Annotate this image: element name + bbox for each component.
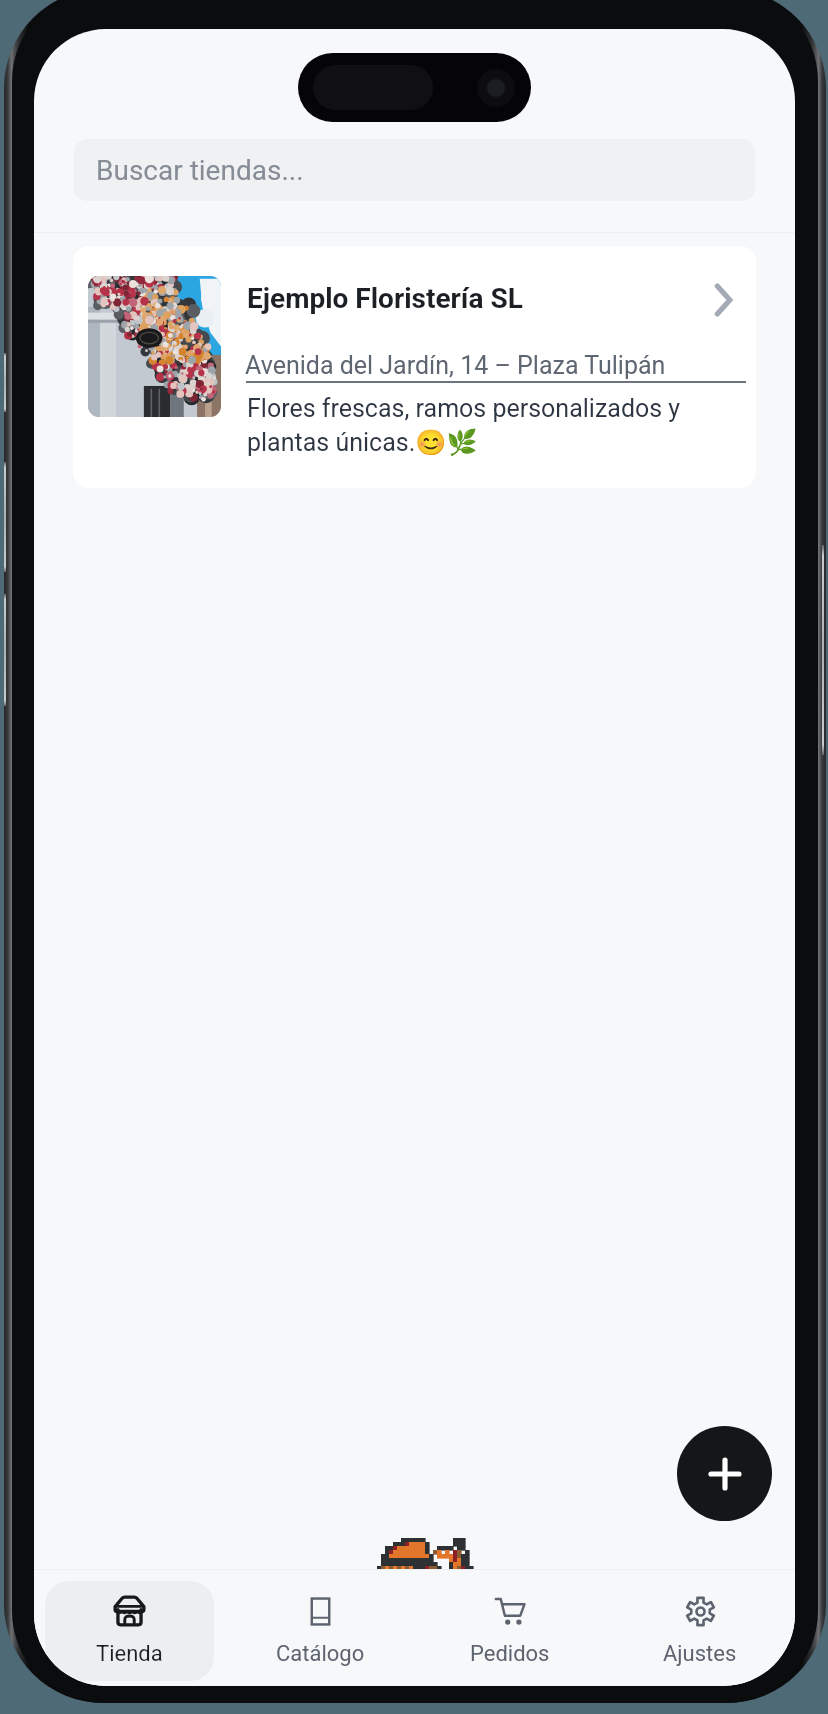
button[interactable]: Ajustes — [616, 1581, 784, 1681]
staticText: Flores frescas, ramos personalizados y p… — [247, 394, 681, 457]
staticText: Tienda — [96, 1641, 163, 1667]
staticText: Ajustes — [663, 1641, 737, 1667]
staticText: Pedidos — [470, 1641, 550, 1667]
staticText: Catálogo — [276, 1641, 365, 1667]
button[interactable]: Tienda — [45, 1581, 214, 1681]
button[interactable]: Abrir tienda — [699, 276, 747, 324]
staticText: Avenida del Jardín, 14 – Plaza Tulipán — [245, 351, 666, 380]
button[interactable]: Catálogo — [236, 1581, 404, 1681]
button[interactable]: Buscar tiendas... — [74, 139, 755, 201]
staticText: Ejemplo Floristería SL — [247, 282, 523, 315]
button[interactable]: Añadir tienda — [677, 1426, 772, 1521]
button[interactable]: Ejemplo Floristería SL — [73, 246, 756, 488]
staticText: Buscar tiendas... — [96, 154, 304, 187]
button[interactable]: Pedidos — [426, 1581, 594, 1681]
